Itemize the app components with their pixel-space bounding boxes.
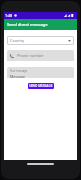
button[interactable]: Country	[7, 36, 74, 45]
staticText: Country	[10, 38, 25, 43]
other: Select country	[68, 40, 71, 42]
staticText: Your message	[10, 69, 28, 73]
other: Phone	[10, 54, 14, 58]
staticText: Send direct message	[7, 22, 48, 28]
staticText: 1:48	[5, 13, 13, 18]
staticText: Message	[10, 74, 25, 78]
staticText: Phone number	[17, 53, 44, 58]
button[interactable]: Phone	[7, 50, 74, 61]
button[interactable]: Your message	[7, 67, 74, 78]
staticText: SEND MESSAGE	[29, 84, 53, 88]
button[interactable]: SEND MESSAGE	[28, 83, 54, 89]
